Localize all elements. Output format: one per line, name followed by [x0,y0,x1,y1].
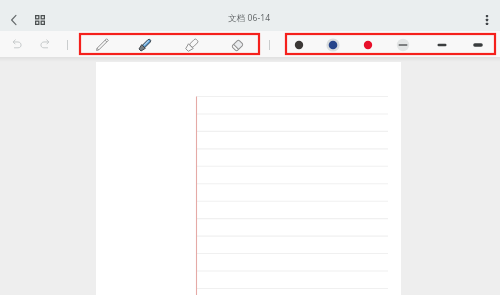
button[interactable]: Red colour [358,35,378,55]
button[interactable]: Undo [7,34,27,54]
button[interactable]: Thick stroke [468,35,488,55]
button[interactable]: Medium stroke [432,35,452,55]
button[interactable]: Pen [92,35,112,55]
button[interactable]: Back [3,9,24,30]
button[interactable]: Highlighter [182,35,202,55]
button[interactable]: Blue pen [135,35,155,55]
button[interactable]: Pages overview [30,10,50,30]
button[interactable]: Blue colour [323,35,343,55]
button[interactable]: Black colour [289,35,309,55]
staticText: 文档 06-14 [228,12,271,24]
button[interactable]: Redo [34,34,54,54]
button[interactable]: Eraser [227,35,247,55]
button[interactable]: Thin stroke [393,35,413,55]
button[interactable]: More options [477,10,497,30]
